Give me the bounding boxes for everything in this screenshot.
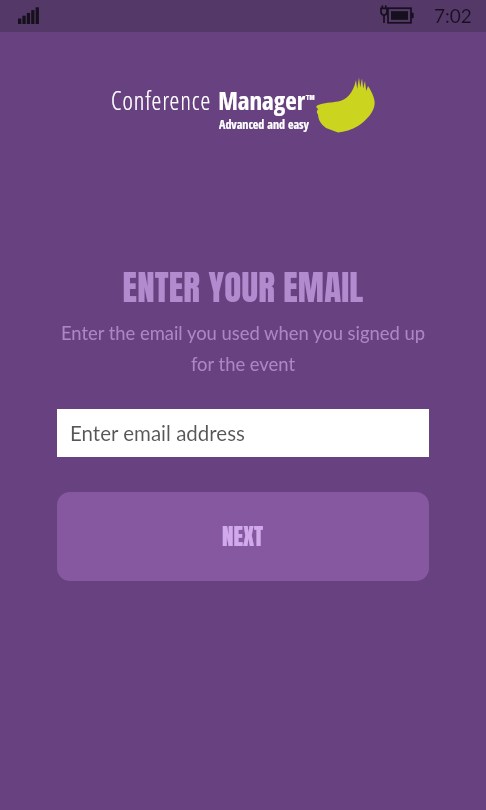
staticText: Advanced and easy	[219, 116, 309, 132]
staticText: Enter the email you used when you signed…	[54, 322, 432, 375]
staticText: ENTER YOUR EMAIL	[0, 261, 486, 314]
button[interactable]: NEXT	[57, 492, 429, 581]
staticText: 7:02	[434, 4, 472, 27]
staticText: NEXT	[222, 519, 264, 554]
staticText: Enter email address	[70, 421, 245, 446]
staticText: Manager	[212, 83, 306, 117]
staticText: Conference	[111, 83, 212, 117]
button[interactable]: Email address input	[57, 409, 429, 457]
staticText: ™	[306, 90, 316, 109]
